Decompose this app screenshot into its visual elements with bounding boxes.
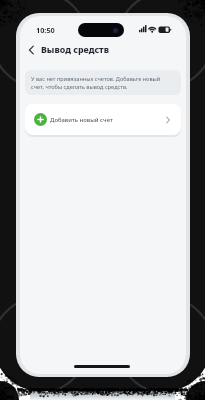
staticText: Добавить новый счет: [50, 116, 113, 124]
staticText: У вас нет привязанных счетов. Добавьте н…: [31, 75, 161, 91]
staticText: 10:50: [36, 25, 55, 35]
button[interactable]: Добавить новый счет: [25, 104, 181, 135]
staticText: Вывод средств: [41, 44, 110, 56]
button[interactable]: [25, 44, 37, 56]
